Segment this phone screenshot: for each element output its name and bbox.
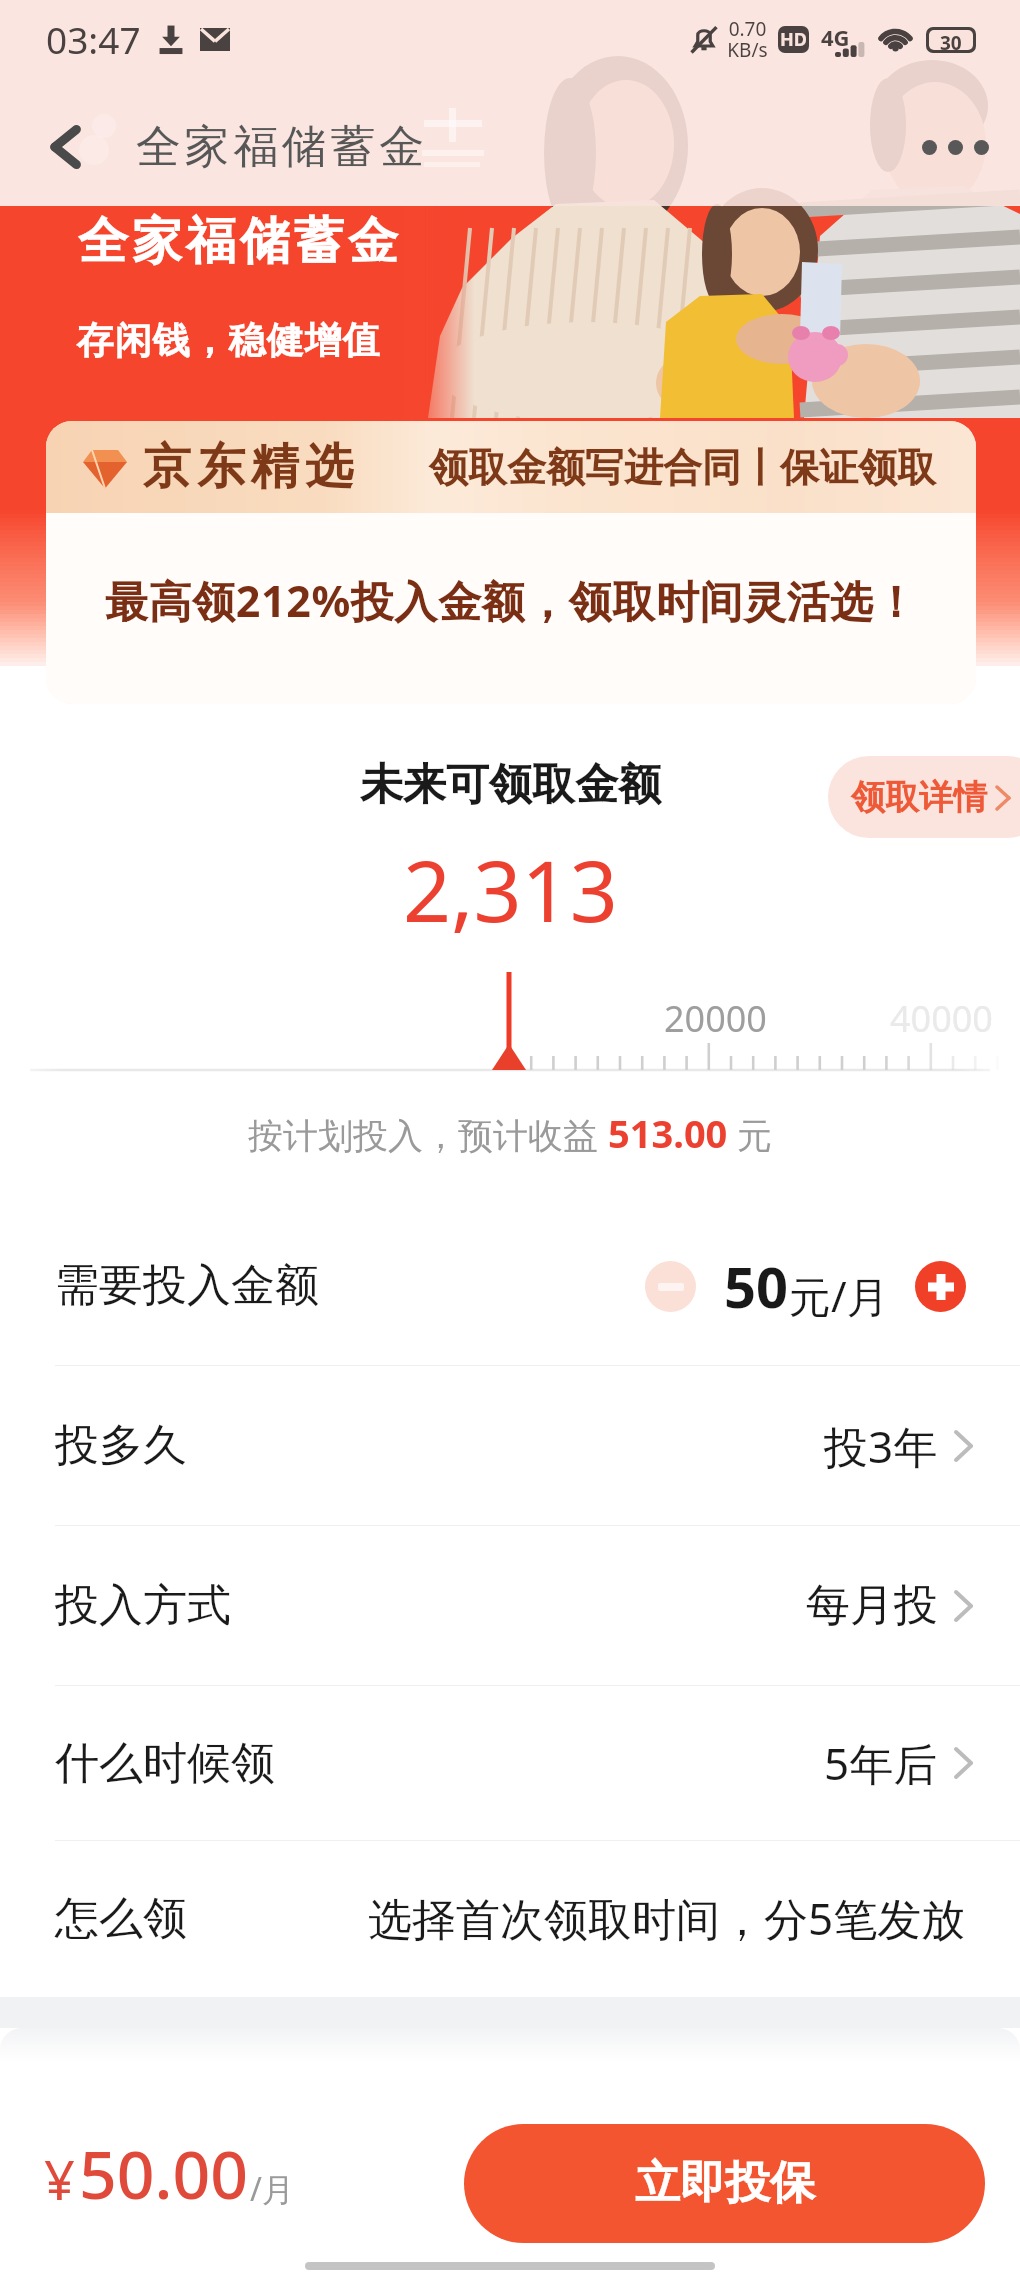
button[interactable]: 投多久 [0, 1366, 1020, 1525]
staticText: 513.00 [608, 1107, 728, 1159]
staticText: 0.70 KB/s [727, 16, 768, 63]
staticText: 50 [724, 1248, 789, 1324]
staticText: 投多久 [55, 1418, 187, 1473]
button[interactable]: 领取详情 [828, 756, 1020, 838]
staticText: 40000 [890, 994, 993, 1043]
button[interactable]: Back [26, 107, 106, 187]
staticText: 什么时候领 [55, 1736, 275, 1791]
staticText: 需要投入金额 [55, 1258, 319, 1313]
staticText: 全家福储蓄金 [76, 210, 400, 273]
staticText: /月 [250, 2167, 294, 2211]
staticText: ¥ [44, 2142, 75, 2216]
button[interactable]: Decrease amount [645, 1261, 696, 1312]
staticText: 30 [940, 30, 962, 50]
staticText: 4G [821, 22, 850, 52]
staticText: 怎么领 [55, 1891, 187, 1946]
staticText: HD [780, 27, 807, 52]
staticText: 50.00 [79, 2128, 248, 2218]
staticText: 元 [728, 1111, 773, 1159]
staticText: 投3年 [824, 1416, 938, 1476]
staticText: 最高领212%投入金额，领取时间灵活选！ [105, 571, 918, 630]
button[interactable]: More options [910, 102, 1000, 192]
staticText: 全家福储蓄金 [136, 119, 428, 176]
staticText: 未来可领取金额 [360, 758, 661, 812]
staticText: 存闲钱，稳健增值 [76, 317, 380, 364]
staticText: 选择首次领取时间，分5笔发放 [368, 1888, 966, 1948]
staticText: 每月投 [806, 1578, 938, 1633]
button[interactable]: 投入方式 [0, 1526, 1020, 1685]
staticText: 京东精选 [140, 437, 356, 497]
button[interactable]: Increase amount [915, 1261, 966, 1312]
button[interactable]: 需要投入金额 [0, 1206, 1020, 1365]
staticText: 元/月 [789, 1267, 889, 1324]
staticText: 立即投保 [635, 2155, 815, 2212]
staticText: 领取详情 [851, 776, 987, 819]
staticText: 领取金额写进合同丨保证领取 [429, 443, 936, 492]
staticText: 03:47 [46, 14, 141, 64]
staticText: 20000 [664, 994, 767, 1043]
button[interactable]: 立即投保 [464, 2124, 985, 2243]
staticText: 5年后 [824, 1733, 938, 1793]
button[interactable]: 什么时候领 [0, 1686, 1020, 1840]
staticText: 投入方式 [55, 1578, 231, 1633]
staticText: 按计划投入，预计收益 [248, 1111, 608, 1159]
staticText: 2,313 [403, 832, 618, 946]
button[interactable]: 怎么领 [0, 1841, 1020, 1995]
